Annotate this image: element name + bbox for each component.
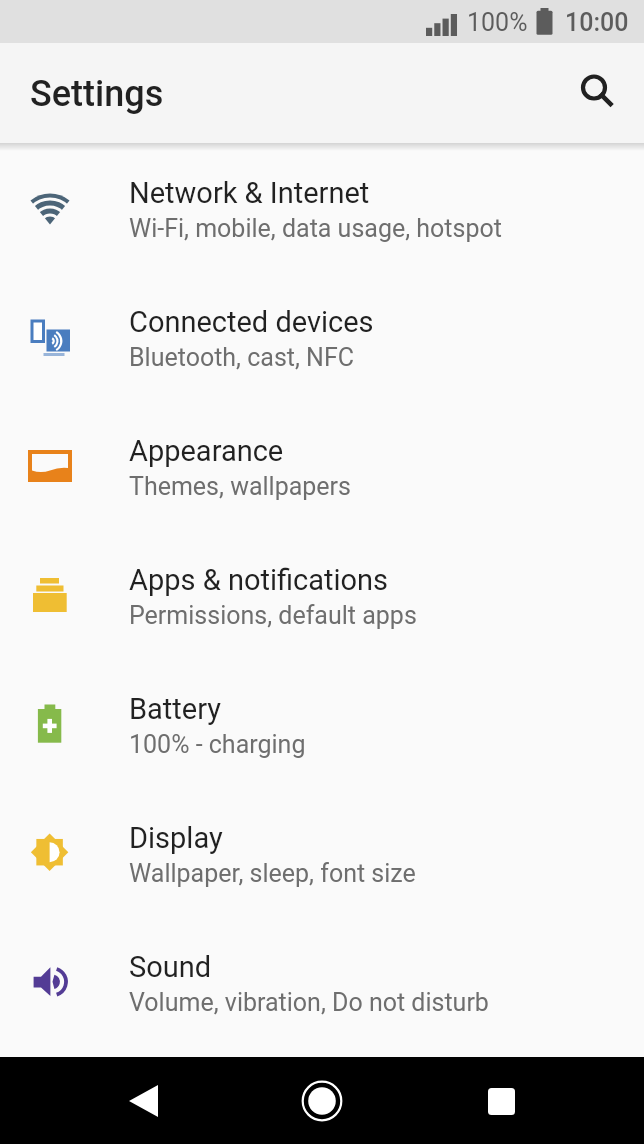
staticText: Bluetooth, cast, NFC	[129, 343, 355, 372]
staticText: Appearance	[129, 434, 284, 468]
staticText: Volume, vibration, Do not disturb	[129, 988, 489, 1017]
staticText: 100% - charging	[129, 730, 306, 759]
button[interactable]: Apps & notifications	[0, 530, 644, 659]
staticText: Display	[129, 821, 223, 855]
staticText: Battery	[129, 692, 221, 726]
button[interactable]: Network & Internet	[0, 143, 644, 272]
button[interactable]: Sound	[0, 917, 644, 1046]
staticText: 10:00	[565, 8, 629, 37]
staticText: Apps & notifications	[129, 563, 389, 597]
button[interactable]	[119, 1077, 167, 1125]
button[interactable]	[298, 1077, 346, 1125]
staticText: Connected devices	[129, 305, 374, 339]
staticText: Themes, wallpapers	[129, 472, 351, 501]
staticText: Sound	[129, 950, 212, 984]
button[interactable]	[477, 1077, 525, 1125]
staticText: 100%	[467, 8, 528, 37]
button[interactable]: Appearance	[0, 401, 644, 530]
button[interactable]: Battery	[0, 659, 644, 788]
staticText: Permissions, default apps	[129, 601, 417, 630]
button[interactable]	[576, 72, 618, 114]
button[interactable]: Connected devices	[0, 272, 644, 401]
staticText: Wallpaper, sleep, font size	[129, 859, 416, 888]
button[interactable]: Display	[0, 788, 644, 917]
staticText: Network & Internet	[129, 176, 370, 210]
staticText: Settings	[30, 73, 164, 115]
staticText: Wi-Fi, mobile, data usage, hotspot	[129, 214, 502, 243]
